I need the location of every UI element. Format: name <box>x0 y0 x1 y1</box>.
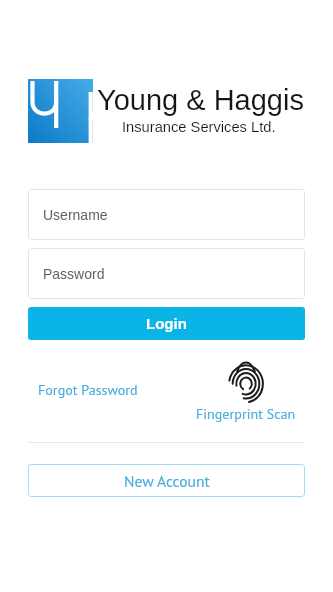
button[interactable]: Login <box>28 307 305 340</box>
button[interactable]: New Account <box>28 464 305 497</box>
staticText: Fingerprint Scan <box>196 405 296 423</box>
button[interactable]: Fingerprint Scan <box>190 360 301 423</box>
staticText: Insurance Services Ltd. <box>122 119 276 135</box>
other: Fingerprint Scan <box>228 360 264 401</box>
staticText: Forgot Password <box>38 381 138 399</box>
staticText: New Account <box>124 471 210 491</box>
button[interactable]: Username <box>28 189 305 240</box>
button[interactable]: Password <box>28 248 305 299</box>
staticText: Login <box>146 315 187 332</box>
staticText: Username <box>43 207 108 223</box>
staticText: Password <box>43 266 105 282</box>
button[interactable]: Forgot Password <box>33 377 143 403</box>
staticText: Young & Haggis <box>97 84 304 116</box>
